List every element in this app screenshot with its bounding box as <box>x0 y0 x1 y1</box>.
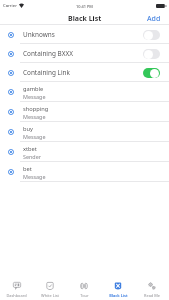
staticText: shopping <box>23 105 49 113</box>
button[interactable]: buy <box>0 122 169 142</box>
button[interactable]: Dashboard <box>0 282 33 298</box>
staticText: Message <box>23 93 46 100</box>
staticText: Add <box>147 14 161 23</box>
button[interactable]: bet <box>0 162 169 182</box>
staticText: Unknowns <box>23 30 55 39</box>
staticText: buy <box>23 125 33 133</box>
button[interactable]: Tour <box>67 282 101 298</box>
staticText: Message <box>23 133 46 140</box>
staticText: Carrier <box>3 3 17 9</box>
button[interactable]: Containing Link <box>0 63 169 82</box>
button[interactable]: gamble <box>0 82 169 102</box>
staticText: Black List <box>109 293 128 298</box>
staticText: bet <box>23 165 32 173</box>
staticText: xtbet <box>23 145 37 153</box>
staticText: Read Me <box>144 293 160 298</box>
button[interactable]: Read Me <box>135 282 169 298</box>
button[interactable]: xtbet <box>0 142 169 162</box>
button[interactable]: Black List <box>101 282 135 298</box>
staticText: Containing BXXX <box>23 49 73 58</box>
button[interactable]: Unknowns <box>0 25 169 44</box>
staticText: Message <box>23 113 46 120</box>
button[interactable]: On <box>143 68 160 78</box>
staticText: Sender <box>23 153 41 160</box>
button[interactable]: White List <box>33 282 67 298</box>
button[interactable]: Off <box>143 49 160 59</box>
staticText: Message <box>23 173 46 180</box>
staticText: White List <box>41 293 59 298</box>
button[interactable]: Off <box>143 30 160 40</box>
staticText: gamble <box>23 85 44 93</box>
staticText: Containing Link <box>23 68 70 77</box>
staticText: Tour <box>80 293 89 298</box>
button[interactable]: Containing BXXX <box>0 44 169 63</box>
staticText: Dashboard <box>6 293 27 298</box>
button[interactable]: shopping <box>0 102 169 122</box>
staticText: 10:41 PM <box>76 4 93 9</box>
staticText: Black List <box>68 14 102 24</box>
button[interactable]: Add <box>138 12 169 25</box>
